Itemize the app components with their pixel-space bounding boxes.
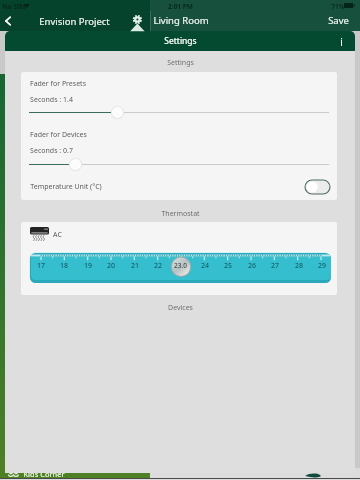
button[interactable]: [29, 157, 329, 172]
staticText: Settings: [167, 58, 194, 68]
staticText: Kids Corner: [23, 469, 65, 478]
button[interactable]: Info: [335, 35, 348, 48]
staticText: 19: [81, 261, 95, 271]
staticText: Seconds : 1.4: [30, 95, 73, 105]
staticText: Save: [328, 14, 349, 27]
staticText: Living Room: [153, 14, 209, 27]
staticText: 17: [34, 261, 48, 271]
staticText: Temperature Unit (°C): [30, 182, 102, 192]
staticText: No SIM: [2, 2, 26, 11]
staticText: 24: [198, 261, 212, 271]
staticText: Fader for Presets: [30, 79, 86, 89]
staticText: 2:01 PM: [168, 2, 193, 11]
button[interactable]: Kids Corner: [0, 469, 150, 478]
button[interactable]: Room settings: [129, 12, 146, 32]
button[interactable]: Temperature unit toggle: [305, 180, 330, 194]
staticText: AC: [53, 230, 62, 240]
staticText: 25: [221, 261, 235, 271]
staticText: Fader for Devices: [30, 130, 87, 140]
button[interactable]: Back: [1, 12, 15, 29]
staticText: 26: [245, 261, 259, 271]
staticText: 23: [175, 261, 189, 271]
staticText: Seconds : 0.7: [30, 146, 73, 156]
staticText: 20: [104, 261, 118, 271]
staticText: 27: [268, 261, 282, 271]
button[interactable]: [29, 105, 329, 120]
staticText: 23.0: [174, 261, 187, 270]
staticText: 29: [315, 261, 329, 271]
staticText: Thermostat: [161, 209, 200, 219]
button[interactable]: Save: [328, 14, 349, 27]
staticText: 18: [57, 261, 71, 271]
staticText: 21: [128, 261, 142, 271]
staticText: Envision Project: [39, 15, 110, 28]
button[interactable]: 17: [30, 253, 331, 283]
staticText: 22: [151, 261, 165, 271]
staticText: i: [340, 35, 343, 48]
staticText: 28: [292, 261, 306, 271]
staticText: Settings: [164, 35, 197, 47]
staticText: 71%: [331, 2, 345, 11]
staticText: Devices: [168, 303, 193, 313]
